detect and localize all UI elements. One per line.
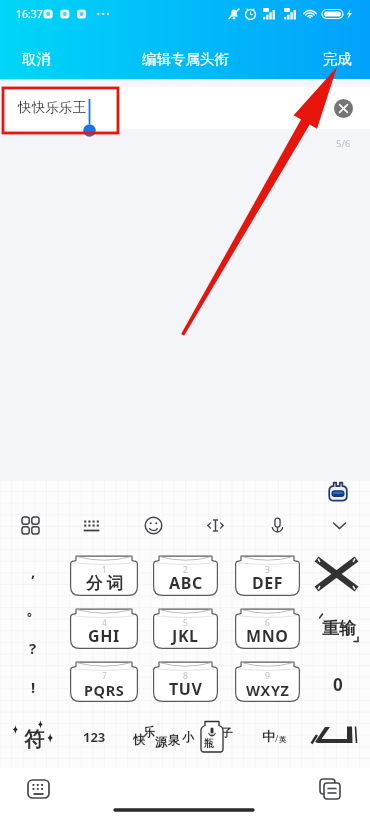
staticText: 4 [102, 617, 107, 629]
staticText: ? [29, 638, 37, 658]
button[interactable]: 7 [70, 661, 138, 702]
button[interactable]: 重输 [318, 613, 360, 643]
staticText: ! [31, 677, 36, 697]
button[interactable]: Enter [310, 724, 360, 750]
staticText: 源 [155, 734, 167, 749]
button[interactable]: , [15, 555, 51, 587]
staticText: 6 [265, 617, 270, 629]
button[interactable]: Hide keyboard [308, 503, 370, 547]
staticText: 子 [221, 725, 233, 740]
button[interactable]: 完成 [323, 50, 352, 68]
button[interactable]: Voice input [246, 503, 308, 547]
staticText: , [31, 561, 36, 581]
staticText: PQRS [84, 680, 125, 700]
staticText: 5 [183, 617, 188, 629]
button[interactable]: Apps [0, 503, 61, 547]
button[interactable]: 6 [235, 608, 300, 649]
staticText: 0 [333, 673, 343, 696]
staticText: 123 [83, 728, 106, 746]
staticText: MNO [246, 625, 289, 647]
staticText: 英 [279, 735, 286, 744]
button[interactable]: Keyboard layout [61, 503, 122, 547]
staticText: 1 [102, 564, 107, 576]
staticText: 9 [265, 670, 270, 682]
button[interactable]: ? [15, 632, 51, 664]
button[interactable]: 0 [324, 671, 351, 698]
staticText: 7 [102, 670, 107, 682]
button[interactable]: 取消 [22, 50, 51, 68]
staticText: 小 [182, 729, 194, 744]
button[interactable]: 5 [153, 608, 218, 649]
button[interactable]: 符 [10, 715, 58, 759]
button[interactable]: Input method logo [327, 480, 349, 502]
button[interactable]: 8 [153, 661, 218, 702]
button[interactable]: 1 [70, 555, 138, 596]
button[interactable]: Clipboard [319, 778, 341, 800]
staticText: 瓶 [204, 737, 214, 750]
staticText: 符 [24, 727, 44, 752]
button[interactable]: Switch input method [27, 779, 50, 799]
staticText: 3 [265, 564, 270, 576]
staticText: 8 [183, 670, 188, 682]
staticText: 乐 [143, 724, 155, 739]
button[interactable]: 4 [70, 608, 138, 649]
staticText: 2 [183, 564, 188, 576]
button[interactable]: 9 [235, 661, 300, 702]
button[interactable]: Clear text [334, 99, 353, 118]
button[interactable]: 3 [235, 555, 300, 596]
button[interactable]: ! [15, 671, 51, 703]
button[interactable]: 中 [262, 724, 300, 748]
staticText: 泉 [168, 732, 180, 747]
staticText: WXYZ [246, 680, 290, 700]
staticText: 中 [262, 728, 275, 744]
button[interactable]: 2 [153, 555, 218, 596]
staticText: 5/6 [336, 137, 351, 150]
staticText: 分词 [84, 573, 125, 594]
button[interactable]: 快 [128, 713, 238, 753]
staticText: 16:37 [16, 7, 43, 21]
staticText: GHI [88, 625, 120, 647]
button[interactable]: 。 [15, 594, 51, 626]
staticText: 快 [133, 732, 145, 747]
staticText: 编辑专属头衔 [142, 50, 229, 68]
button[interactable]: 123 [74, 723, 114, 751]
staticText: / [275, 732, 279, 744]
staticText: 重输 [322, 618, 356, 639]
staticText: TUV [169, 678, 203, 700]
staticText: JKL [172, 625, 199, 647]
staticText: 。 [26, 601, 41, 620]
staticText: DEF [252, 572, 284, 594]
staticText: 完成 [323, 50, 352, 68]
button[interactable]: Move cursor [184, 503, 246, 547]
button[interactable]: Emoji [122, 503, 184, 547]
staticText: ABC [169, 572, 203, 594]
staticText: 取消 [22, 50, 51, 68]
staticText: 快快乐乐王 [18, 99, 87, 116]
button[interactable]: Delete [314, 556, 359, 592]
